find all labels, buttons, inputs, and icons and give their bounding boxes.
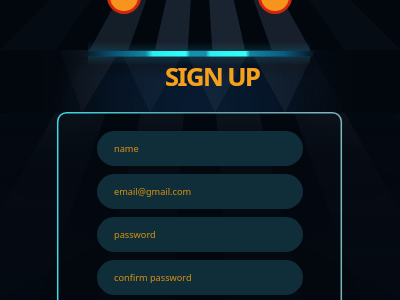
button[interactable]: confirm password [97,260,303,295]
staticText: confirm password [114,271,192,284]
button[interactable]: name [97,131,303,166]
button[interactable]: Lamp [261,0,289,11]
staticText: email@gmail.com [114,185,192,198]
button[interactable]: email@gmail.com [97,174,303,209]
staticText: name [114,142,139,155]
staticText: password [114,228,156,241]
button[interactable]: password [97,217,303,252]
button[interactable]: Lamp [110,0,138,11]
staticText: SIGN UP [165,59,260,94]
